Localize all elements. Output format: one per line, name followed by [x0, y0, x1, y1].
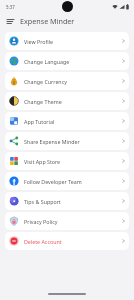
staticText: Change Theme [24, 98, 122, 105]
staticText: Change Currency [24, 78, 122, 85]
staticText: Privacy Policy [24, 218, 122, 225]
staticText: Follow Developer Team [24, 178, 122, 185]
button[interactable]: Share Expense Minder [5, 132, 129, 150]
button[interactable]: Change Language [5, 52, 129, 70]
staticText: Visit App Store [24, 158, 122, 165]
staticText: 5:37 [6, 4, 15, 10]
button[interactable]: Visit App Store [5, 152, 129, 170]
staticText: Share Expense Minder [24, 138, 122, 145]
button[interactable]: App Tutorial [5, 112, 129, 130]
button[interactable]: View Profile [5, 32, 129, 50]
button[interactable]: Follow Developer Team [5, 172, 129, 190]
staticText: Delete Account [24, 238, 122, 245]
button[interactable]: Open navigation menu [4, 15, 17, 28]
button[interactable]: Privacy Policy [5, 212, 129, 230]
staticText: Tips & Support [24, 198, 122, 205]
button[interactable]: Change Theme [5, 92, 129, 110]
staticText: App Tutorial [24, 118, 122, 125]
staticText: Expense Minder [20, 16, 75, 26]
staticText: View Profile [24, 38, 122, 45]
button[interactable]: Tips & Support [5, 192, 129, 210]
button[interactable]: Change Currency [5, 72, 129, 90]
staticText: Change Language [24, 58, 122, 65]
button[interactable]: Delete Account [5, 232, 129, 250]
